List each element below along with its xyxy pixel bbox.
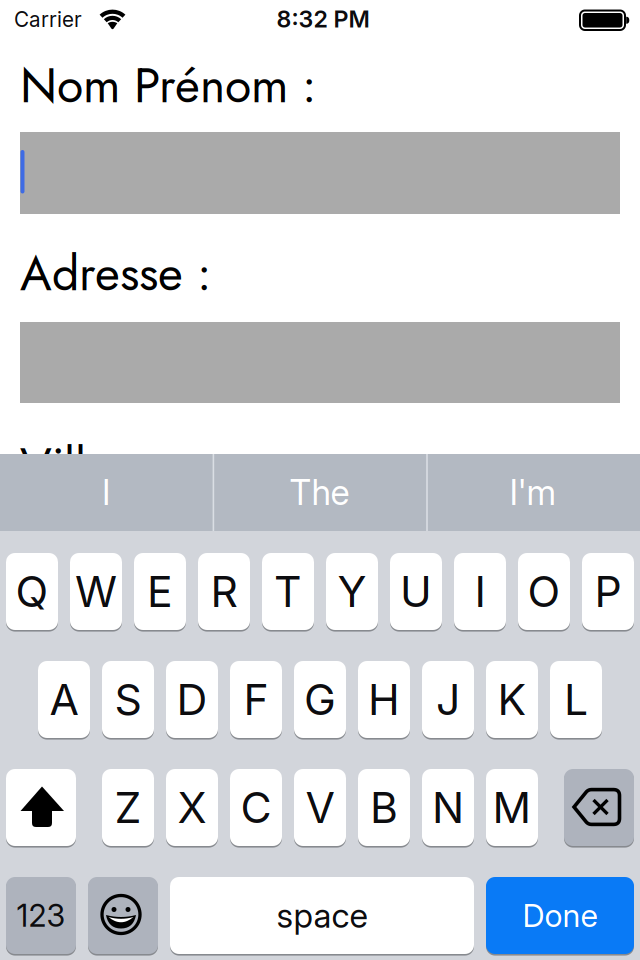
staticText: K xyxy=(497,674,526,725)
staticText: T xyxy=(274,566,302,617)
button[interactable]: M xyxy=(486,769,538,846)
button[interactable]: The xyxy=(213,454,425,531)
staticText: D xyxy=(176,674,207,725)
button[interactable]: J xyxy=(422,661,474,738)
staticText: space xyxy=(276,895,367,936)
staticText: W xyxy=(75,566,117,617)
button[interactable]: N xyxy=(422,769,474,846)
staticText: C xyxy=(240,782,271,833)
button[interactable]: Y xyxy=(326,553,378,630)
button[interactable]: F xyxy=(230,661,282,738)
button[interactable]: O xyxy=(518,553,570,630)
staticText: F xyxy=(243,674,268,725)
button[interactable]: I xyxy=(0,454,212,531)
button[interactable]: D xyxy=(166,661,218,738)
staticText: X xyxy=(177,782,206,833)
staticText: I'm xyxy=(509,471,556,513)
button[interactable]: L xyxy=(550,661,602,738)
staticText: 8:32 PM xyxy=(276,5,369,33)
button[interactable]: U xyxy=(390,553,442,630)
button[interactable]: Z xyxy=(102,769,154,846)
staticText: Z xyxy=(114,782,141,833)
button[interactable]: Emoji xyxy=(88,877,158,954)
button[interactable]: B xyxy=(358,769,410,846)
button[interactable]: space xyxy=(170,877,474,954)
button[interactable]: Done xyxy=(486,877,634,954)
staticText: R xyxy=(210,566,237,617)
staticText: N xyxy=(432,782,464,833)
staticText: J xyxy=(436,674,460,725)
button[interactable]: C xyxy=(230,769,282,846)
staticText: B xyxy=(370,782,398,833)
staticText: S xyxy=(114,674,141,725)
staticText: V xyxy=(305,782,334,833)
button[interactable]: H xyxy=(358,661,410,738)
button[interactable]: E xyxy=(134,553,186,630)
staticText: Y xyxy=(337,566,366,617)
staticText: 123 xyxy=(16,897,65,934)
button[interactable]: K xyxy=(486,661,538,738)
button[interactable]: G xyxy=(294,661,346,738)
button[interactable]: W xyxy=(70,553,122,630)
staticText: The xyxy=(289,471,349,513)
button[interactable]: S xyxy=(102,661,154,738)
button[interactable]: 123 xyxy=(6,877,76,954)
staticText: I xyxy=(102,471,110,513)
staticText: I xyxy=(474,566,485,617)
button[interactable]: R xyxy=(198,553,250,630)
button[interactable]: A xyxy=(38,661,90,738)
button[interactable]: Delete xyxy=(564,769,634,846)
staticText: Carrier xyxy=(14,7,82,32)
button[interactable]: V xyxy=(294,769,346,846)
staticText: U xyxy=(400,566,432,617)
staticText: P xyxy=(594,566,621,617)
button[interactable]: P xyxy=(582,553,634,630)
staticText: H xyxy=(368,674,400,725)
button[interactable]: I'm xyxy=(427,454,639,531)
staticText: Ville : xyxy=(20,431,139,500)
button[interactable]: Nom Prénom xyxy=(20,132,620,214)
staticText: G xyxy=(304,674,336,725)
staticText: Nom Prénom : xyxy=(20,51,316,120)
staticText: E xyxy=(147,566,173,617)
button[interactable]: X xyxy=(166,769,218,846)
staticText: Q xyxy=(15,566,48,617)
button[interactable]: Shift xyxy=(6,769,76,846)
button[interactable]: I xyxy=(454,553,506,630)
staticText: O xyxy=(527,566,560,617)
button[interactable]: Q xyxy=(6,553,58,630)
button[interactable]: T xyxy=(262,553,314,630)
staticText: L xyxy=(564,674,588,725)
staticText: Done xyxy=(522,896,597,934)
staticText: Adresse : xyxy=(20,239,211,308)
staticText: A xyxy=(49,674,78,725)
staticText: M xyxy=(492,782,531,833)
